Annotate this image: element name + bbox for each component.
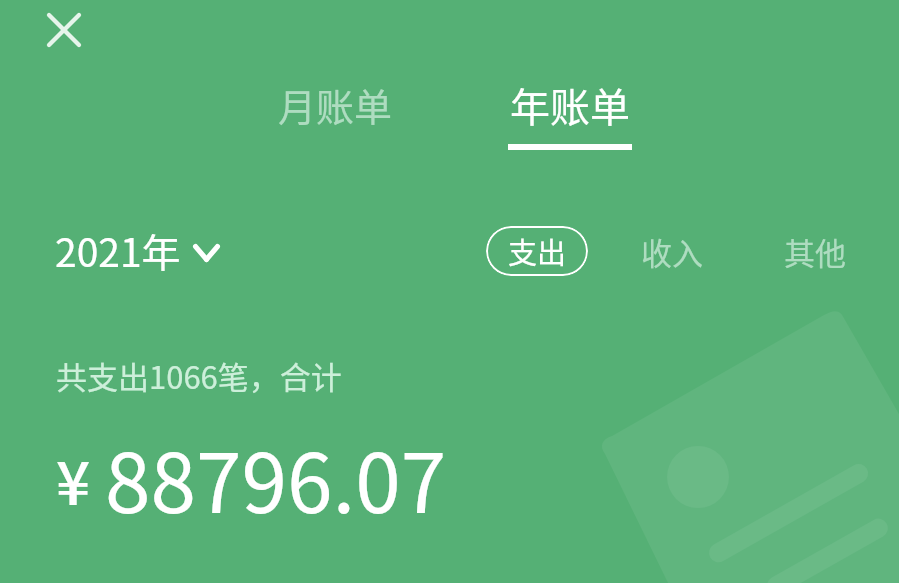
staticText: 年账单	[510, 76, 630, 134]
staticText: 月账单	[278, 77, 393, 132]
staticText: ¥	[56, 435, 91, 522]
button[interactable]: Close	[37, 3, 91, 57]
button[interactable]: 支出	[486, 226, 588, 276]
staticText: 88796.07	[105, 418, 447, 537]
staticText: 共支出1066笔，合计	[56, 353, 342, 398]
button[interactable]: 月账单	[264, 69, 407, 140]
button[interactable]: 其他	[770, 218, 860, 285]
staticText: 支出	[508, 230, 567, 272]
staticText: 其他	[784, 229, 846, 274]
staticText: 收入	[641, 229, 703, 274]
button[interactable]: 2021年	[55, 218, 228, 282]
button[interactable]: 收入	[627, 218, 717, 285]
button[interactable]: 年账单	[494, 68, 646, 158]
staticText: 2021年	[55, 222, 181, 278]
